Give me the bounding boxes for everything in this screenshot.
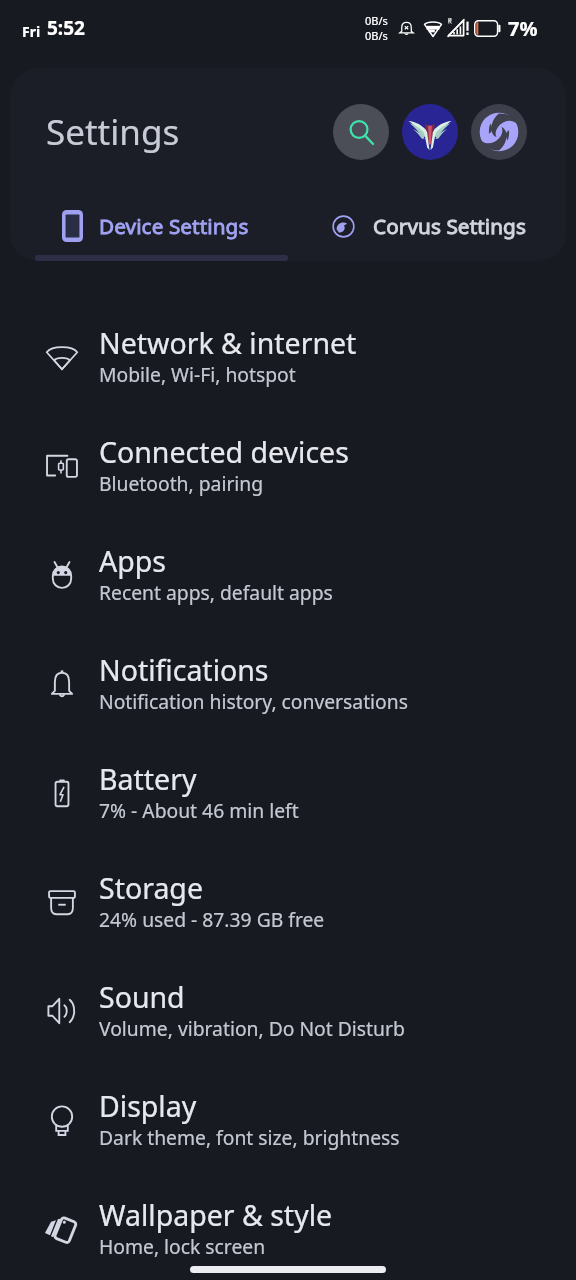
staticText: 7% bbox=[508, 15, 538, 42]
staticText: Apps bbox=[99, 542, 166, 581]
button[interactable]: Wallpaper & style bbox=[0, 1174, 576, 1280]
staticText: Device Settings bbox=[99, 212, 249, 240]
staticText: Recent apps, default apps bbox=[99, 579, 333, 605]
staticText: Fri bbox=[22, 22, 41, 41]
staticText: Display bbox=[99, 1087, 197, 1126]
staticText: Settings bbox=[46, 108, 180, 156]
button[interactable]: Apps bbox=[0, 520, 576, 629]
staticText: Wallpaper & style bbox=[99, 1196, 333, 1235]
button[interactable]: Sound bbox=[0, 956, 576, 1065]
staticText: Bluetooth, pairing bbox=[99, 470, 264, 496]
button[interactable]: Display bbox=[0, 1065, 576, 1174]
staticText: 7% - About 46 min left bbox=[99, 797, 299, 823]
button[interactable]: Device Settings bbox=[62, 203, 249, 249]
staticText: Notifications bbox=[99, 651, 269, 690]
button[interactable]: Corvus bbox=[471, 104, 527, 160]
button[interactable]: Battery bbox=[0, 738, 576, 847]
button[interactable]: Connected devices bbox=[0, 411, 576, 520]
button[interactable]: Search bbox=[333, 104, 389, 160]
button[interactable]: Corvus Settings bbox=[332, 203, 526, 249]
staticText: Notification history, conversations bbox=[99, 688, 408, 714]
staticText: 0B/s bbox=[365, 13, 388, 28]
staticText: Battery bbox=[99, 760, 197, 799]
staticText: Storage bbox=[99, 869, 203, 908]
staticText: Dark theme, font size, brightness bbox=[99, 1124, 400, 1150]
staticText: Corvus Settings bbox=[373, 212, 526, 240]
staticText: Volume, vibration, Do Not Disturb bbox=[99, 1015, 405, 1041]
staticText: 0B/s bbox=[365, 28, 388, 43]
button[interactable]: Storage bbox=[0, 847, 576, 956]
staticText: Home, lock screen bbox=[99, 1233, 266, 1259]
button[interactable]: Network & internet bbox=[0, 302, 576, 411]
staticText: Mobile, Wi-Fi, hotspot bbox=[99, 361, 296, 387]
button[interactable]: Notifications bbox=[0, 629, 576, 738]
staticText: Connected devices bbox=[99, 433, 349, 472]
button[interactable]: Profile bbox=[402, 104, 458, 160]
staticText: Network & internet bbox=[99, 324, 357, 363]
staticText: Sound bbox=[99, 978, 185, 1017]
staticText: 24% used - 87.39 GB free bbox=[99, 906, 325, 932]
staticText: 5:52 bbox=[47, 15, 85, 41]
